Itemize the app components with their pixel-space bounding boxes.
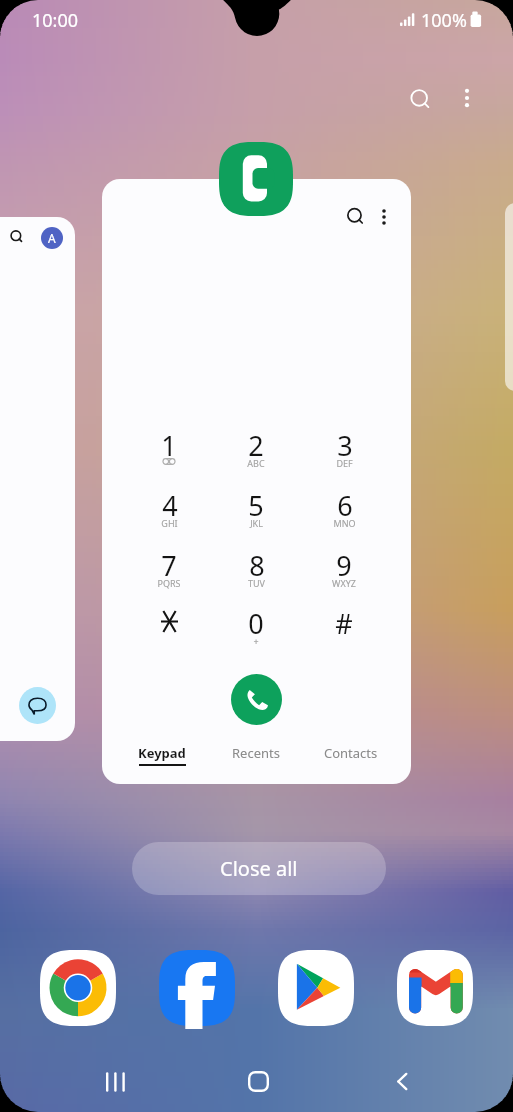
staticText: 3 xyxy=(337,427,353,464)
button[interactable]: Gmail xyxy=(397,950,473,1026)
button[interactable]: Search xyxy=(400,79,442,121)
button[interactable]: Search messages xyxy=(2,222,32,252)
button[interactable]: 5 xyxy=(226,487,286,539)
staticText: 8 xyxy=(249,547,265,584)
staticText: 100% xyxy=(421,8,467,33)
staticText: Recents xyxy=(232,744,280,762)
button[interactable]: 7 xyxy=(139,547,199,599)
staticText: ABC xyxy=(247,457,265,469)
staticText: # xyxy=(335,605,353,642)
staticText: 6 xyxy=(337,487,353,524)
button[interactable]: 4 xyxy=(139,487,199,539)
staticText: 7 xyxy=(161,547,177,584)
staticText: 0 xyxy=(248,605,264,642)
button[interactable]: Phone recent app xyxy=(102,179,411,784)
button[interactable]: More options xyxy=(364,197,404,237)
button[interactable]: 2 xyxy=(226,427,286,479)
button[interactable]: Recents xyxy=(209,744,303,778)
staticText: 5 xyxy=(248,487,264,524)
button[interactable]: Keypad xyxy=(115,744,209,778)
staticText: GHI xyxy=(161,517,178,529)
button[interactable]: 1 xyxy=(139,427,199,479)
staticText: JKL xyxy=(250,517,263,529)
button[interactable]: Search contacts xyxy=(336,197,376,237)
button[interactable]: Back xyxy=(381,1060,424,1103)
staticText: DEF xyxy=(336,457,353,469)
button[interactable]: Facebook xyxy=(159,950,235,1026)
button[interactable]: More options xyxy=(446,77,488,119)
button[interactable]: 3 xyxy=(314,427,374,479)
staticText: 4 xyxy=(162,487,178,524)
button[interactable]: 9 xyxy=(314,547,374,599)
staticText: A xyxy=(48,230,56,246)
staticText: + xyxy=(253,635,259,647)
button[interactable]: Contacts xyxy=(304,744,398,778)
staticText: MNO xyxy=(333,517,356,529)
button[interactable]: 0 xyxy=(226,605,286,657)
staticText: Close all xyxy=(220,855,298,882)
button[interactable]: Account xyxy=(41,227,63,249)
staticText: 2 xyxy=(248,427,264,464)
staticText: Keypad xyxy=(138,744,186,762)
button[interactable]: Call xyxy=(231,674,282,725)
button[interactable]: Messages recent app xyxy=(0,217,75,741)
staticText: 1 xyxy=(161,427,177,464)
button[interactable]: Play Store xyxy=(278,950,354,1026)
staticText: 10:00 xyxy=(32,8,79,33)
button[interactable]: Chrome xyxy=(40,950,116,1026)
button[interactable]: 6 xyxy=(314,487,374,539)
button[interactable]: Home xyxy=(237,1060,280,1103)
button[interactable]: Close all xyxy=(132,842,386,895)
button[interactable] xyxy=(139,605,199,657)
button[interactable]: # xyxy=(314,605,374,657)
staticText: Contacts xyxy=(324,744,378,762)
button[interactable]: Recent apps xyxy=(94,1060,137,1103)
staticText: TUV xyxy=(248,577,265,589)
staticText: 9 xyxy=(336,547,352,584)
button[interactable]: 8 xyxy=(226,547,286,599)
staticText: PQRS xyxy=(157,577,181,589)
staticText: WXYZ xyxy=(332,577,356,589)
